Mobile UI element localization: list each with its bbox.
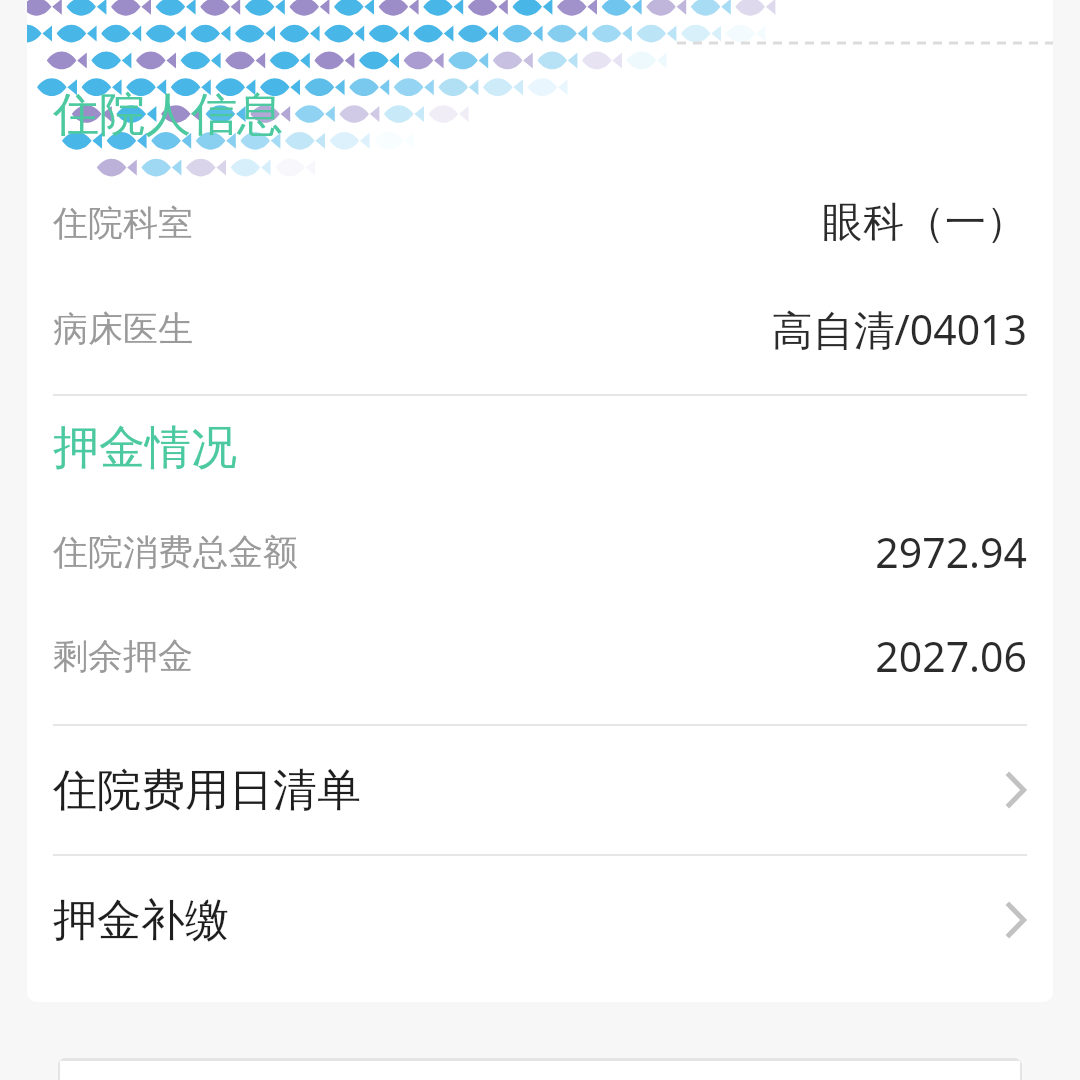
other: 住院费用日清单: [1003, 769, 1027, 811]
staticText: 住院费用日清单: [53, 763, 361, 818]
button[interactable]: 住院费用日清单: [27, 726, 1053, 854]
other: 押金补缴: [1003, 899, 1027, 941]
staticText: 剩余押金: [53, 634, 193, 678]
button[interactable]: 押金补缴: [27, 856, 1053, 984]
button[interactable]: 住院消费总金额: [27, 500, 1053, 604]
staticText: 押金情况: [53, 419, 237, 477]
staticText: 住院科室: [53, 201, 193, 245]
staticText: 住院人信息: [53, 86, 283, 144]
staticText: 押金补缴: [53, 893, 229, 948]
staticText: 眼科（一）: [822, 197, 1027, 249]
staticText: 高自清/04013: [771, 301, 1027, 357]
staticText: 2972.94: [875, 524, 1027, 580]
staticText: 2027.06: [875, 628, 1027, 684]
button[interactable]: 住院科室: [27, 170, 1053, 276]
staticText: 病床医生: [53, 307, 193, 351]
staticText: 住院消费总金额: [53, 530, 298, 574]
button[interactable]: 病床医生: [27, 276, 1053, 382]
button[interactable]: 剩余押金: [27, 604, 1053, 708]
